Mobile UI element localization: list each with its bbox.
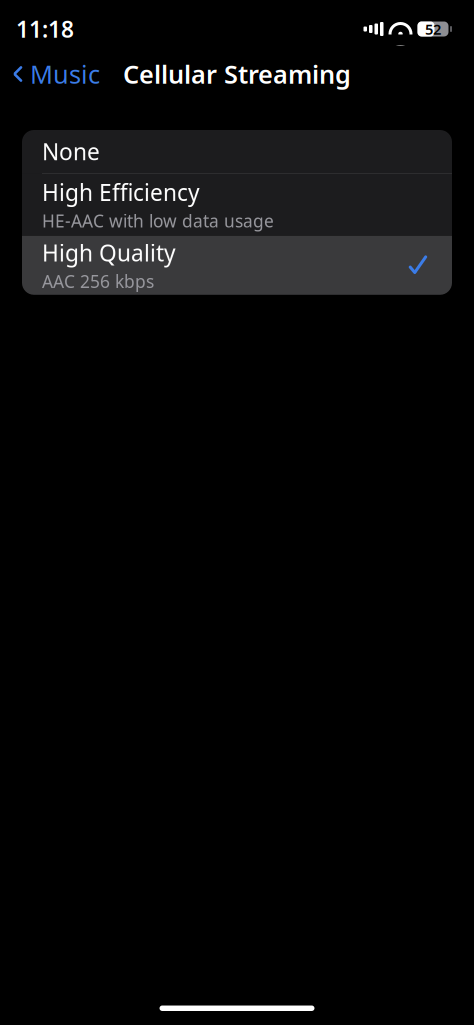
staticText: None xyxy=(42,136,100,166)
staticText: High Efficiency xyxy=(42,177,200,207)
staticText: 11:18 xyxy=(16,14,74,44)
button[interactable]: High Efficiency xyxy=(22,174,452,236)
button[interactable]: None xyxy=(22,130,452,173)
staticText: AAC 256 kbps xyxy=(42,270,154,293)
staticText: 52 xyxy=(425,19,441,39)
button[interactable]: High Quality xyxy=(22,236,452,295)
button[interactable]: Music xyxy=(0,49,100,99)
staticText: Music xyxy=(30,57,100,91)
staticText: High Quality xyxy=(42,238,176,268)
staticText: Cellular Streaming xyxy=(123,57,351,91)
staticText: HE-AAC with low data usage xyxy=(42,209,274,232)
